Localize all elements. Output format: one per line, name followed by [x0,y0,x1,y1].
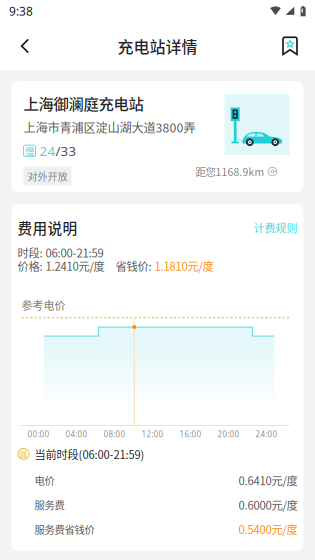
staticText: 上海御澜庭充电站 [23,92,143,114]
staticText: 服务费省钱价 [34,522,94,537]
staticText: 省钱价: [115,258,154,274]
staticText: 24:00 [255,429,277,439]
staticText: 0.6410元/度 [238,472,297,488]
staticText: 0.5400元/度 [238,521,297,537]
staticText: 时段: 06:00-21:59 [17,244,103,261]
staticText: 价格: 1.2410元/度 [17,258,104,274]
staticText: 距您1168.9km [195,164,264,179]
staticText: 9:38 [9,3,33,19]
staticText: 充电站详情 [117,34,197,58]
button[interactable]: 计费规则 [253,220,297,235]
staticText: 电价 [34,473,54,488]
staticText: 费用说明 [17,217,77,238]
staticText: 24 [39,142,55,160]
staticText: 20:00 [217,429,239,439]
staticText: 参考电价 [21,297,65,313]
staticText: 对外开放 [27,169,67,183]
staticText: 0.6000元/度 [238,496,297,513]
staticText: 服务费 [34,497,64,512]
staticText: 1.1810元/度 [154,258,213,274]
staticText: 计费规则 [253,220,297,235]
staticText: 08:00 [103,429,125,439]
staticText: 04:00 [65,429,87,439]
staticText: 上海市青浦区淀山湖大道3800弄 [23,118,195,136]
staticText: 慢 [25,144,34,158]
staticText: /33 [55,142,76,160]
staticText: 16:00 [179,429,201,439]
staticText: 峰 [19,448,27,460]
staticText: 当前时段(06:00-21:59) [34,446,144,462]
button[interactable]: Favorite [271,22,309,70]
staticText: 12:00 [141,429,163,439]
button[interactable]: Back [6,22,44,70]
staticText: 00:00 [27,429,49,439]
